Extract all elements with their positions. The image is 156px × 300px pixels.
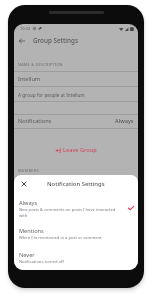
button[interactable]: Back	[16, 35, 27, 46]
staticText: Always	[115, 117, 134, 125]
staticText: Notifications turned off	[19, 259, 64, 265]
staticText: Mentions	[19, 227, 44, 235]
button[interactable]: Never	[14, 251, 138, 268]
button[interactable]: Always	[14, 199, 138, 221]
button[interactable]: Intellum	[14, 71, 138, 86]
staticText: Always	[19, 199, 38, 207]
staticText: A group for people at Intellum	[18, 92, 85, 98]
staticText: Never	[19, 251, 35, 259]
staticText: Leave Group	[63, 146, 97, 154]
button[interactable]: A group for people at Intellum	[14, 87, 138, 102]
button[interactable]: Notifications	[14, 114, 138, 127]
button[interactable]: Mentions	[14, 227, 138, 244]
button[interactable]: Leave Group	[14, 144, 138, 156]
staticText: Group Settings	[33, 36, 78, 45]
staticText: Notifications	[18, 117, 52, 125]
staticText: NAME & DESCRIPTION	[18, 62, 63, 67]
staticText: MEMBERS	[18, 168, 40, 173]
staticText: Intellum	[18, 75, 41, 83]
staticText: New posts & comments on posts I have int…	[19, 207, 116, 213]
staticText: Notification Settings	[47, 180, 105, 188]
staticText: When I'm mentioned in a post or comment	[19, 235, 102, 241]
staticText: with	[19, 213, 28, 219]
staticText: 10:32	[20, 26, 31, 31]
button[interactable]: Close	[18, 178, 29, 189]
